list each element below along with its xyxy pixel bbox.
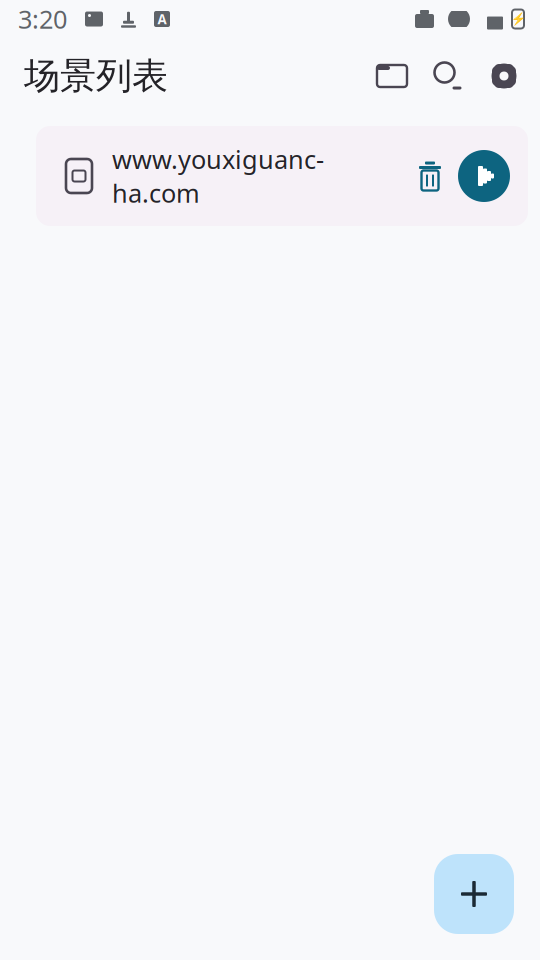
button[interactable]: Search <box>420 48 476 104</box>
button[interactable]: Add scene <box>434 854 514 934</box>
button[interactable]: Play <box>454 146 514 206</box>
staticText: 场景列表 <box>24 54 168 98</box>
button[interactable]: Delete <box>406 152 454 200</box>
staticText: www.youxiguancha.com <box>112 142 324 210</box>
button[interactable]: Open folder <box>364 48 420 104</box>
staticText: A <box>157 10 166 28</box>
button[interactable]: Settings <box>476 48 532 104</box>
button[interactable]: www.youxiguancha.com <box>36 126 528 226</box>
staticText: ⚡ <box>510 12 525 26</box>
staticText: 3:20 <box>18 2 67 36</box>
